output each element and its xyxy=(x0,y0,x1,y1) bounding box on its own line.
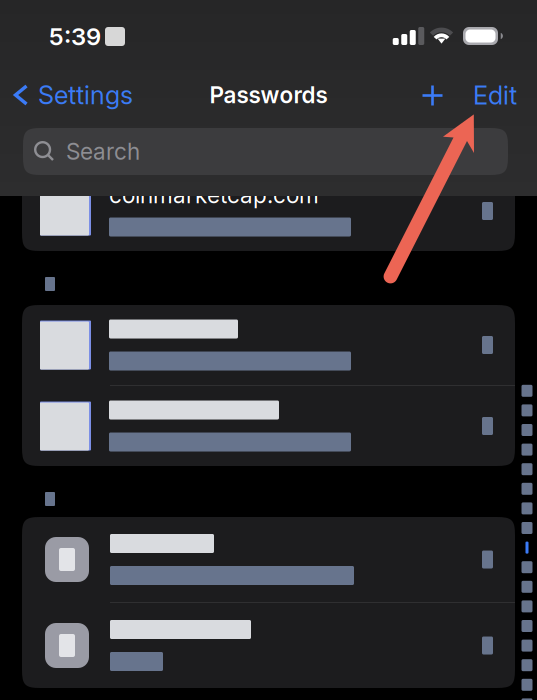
staticText: Edit xyxy=(473,80,517,111)
button[interactable] xyxy=(22,305,515,385)
button[interactable] xyxy=(22,386,515,466)
button[interactable] xyxy=(22,517,515,602)
button[interactable]: Add password xyxy=(410,74,455,117)
staticText: coinmarketcap.com xyxy=(109,181,319,209)
button[interactable]: Search xyxy=(23,128,508,175)
staticText: Passwords xyxy=(209,81,327,109)
button[interactable]: Edit xyxy=(459,69,531,122)
button[interactable] xyxy=(22,603,515,688)
staticText: Search xyxy=(66,138,140,165)
button[interactable]: Settings xyxy=(0,73,133,117)
staticText: 5:39 xyxy=(49,22,101,51)
staticText: Settings xyxy=(38,80,133,110)
